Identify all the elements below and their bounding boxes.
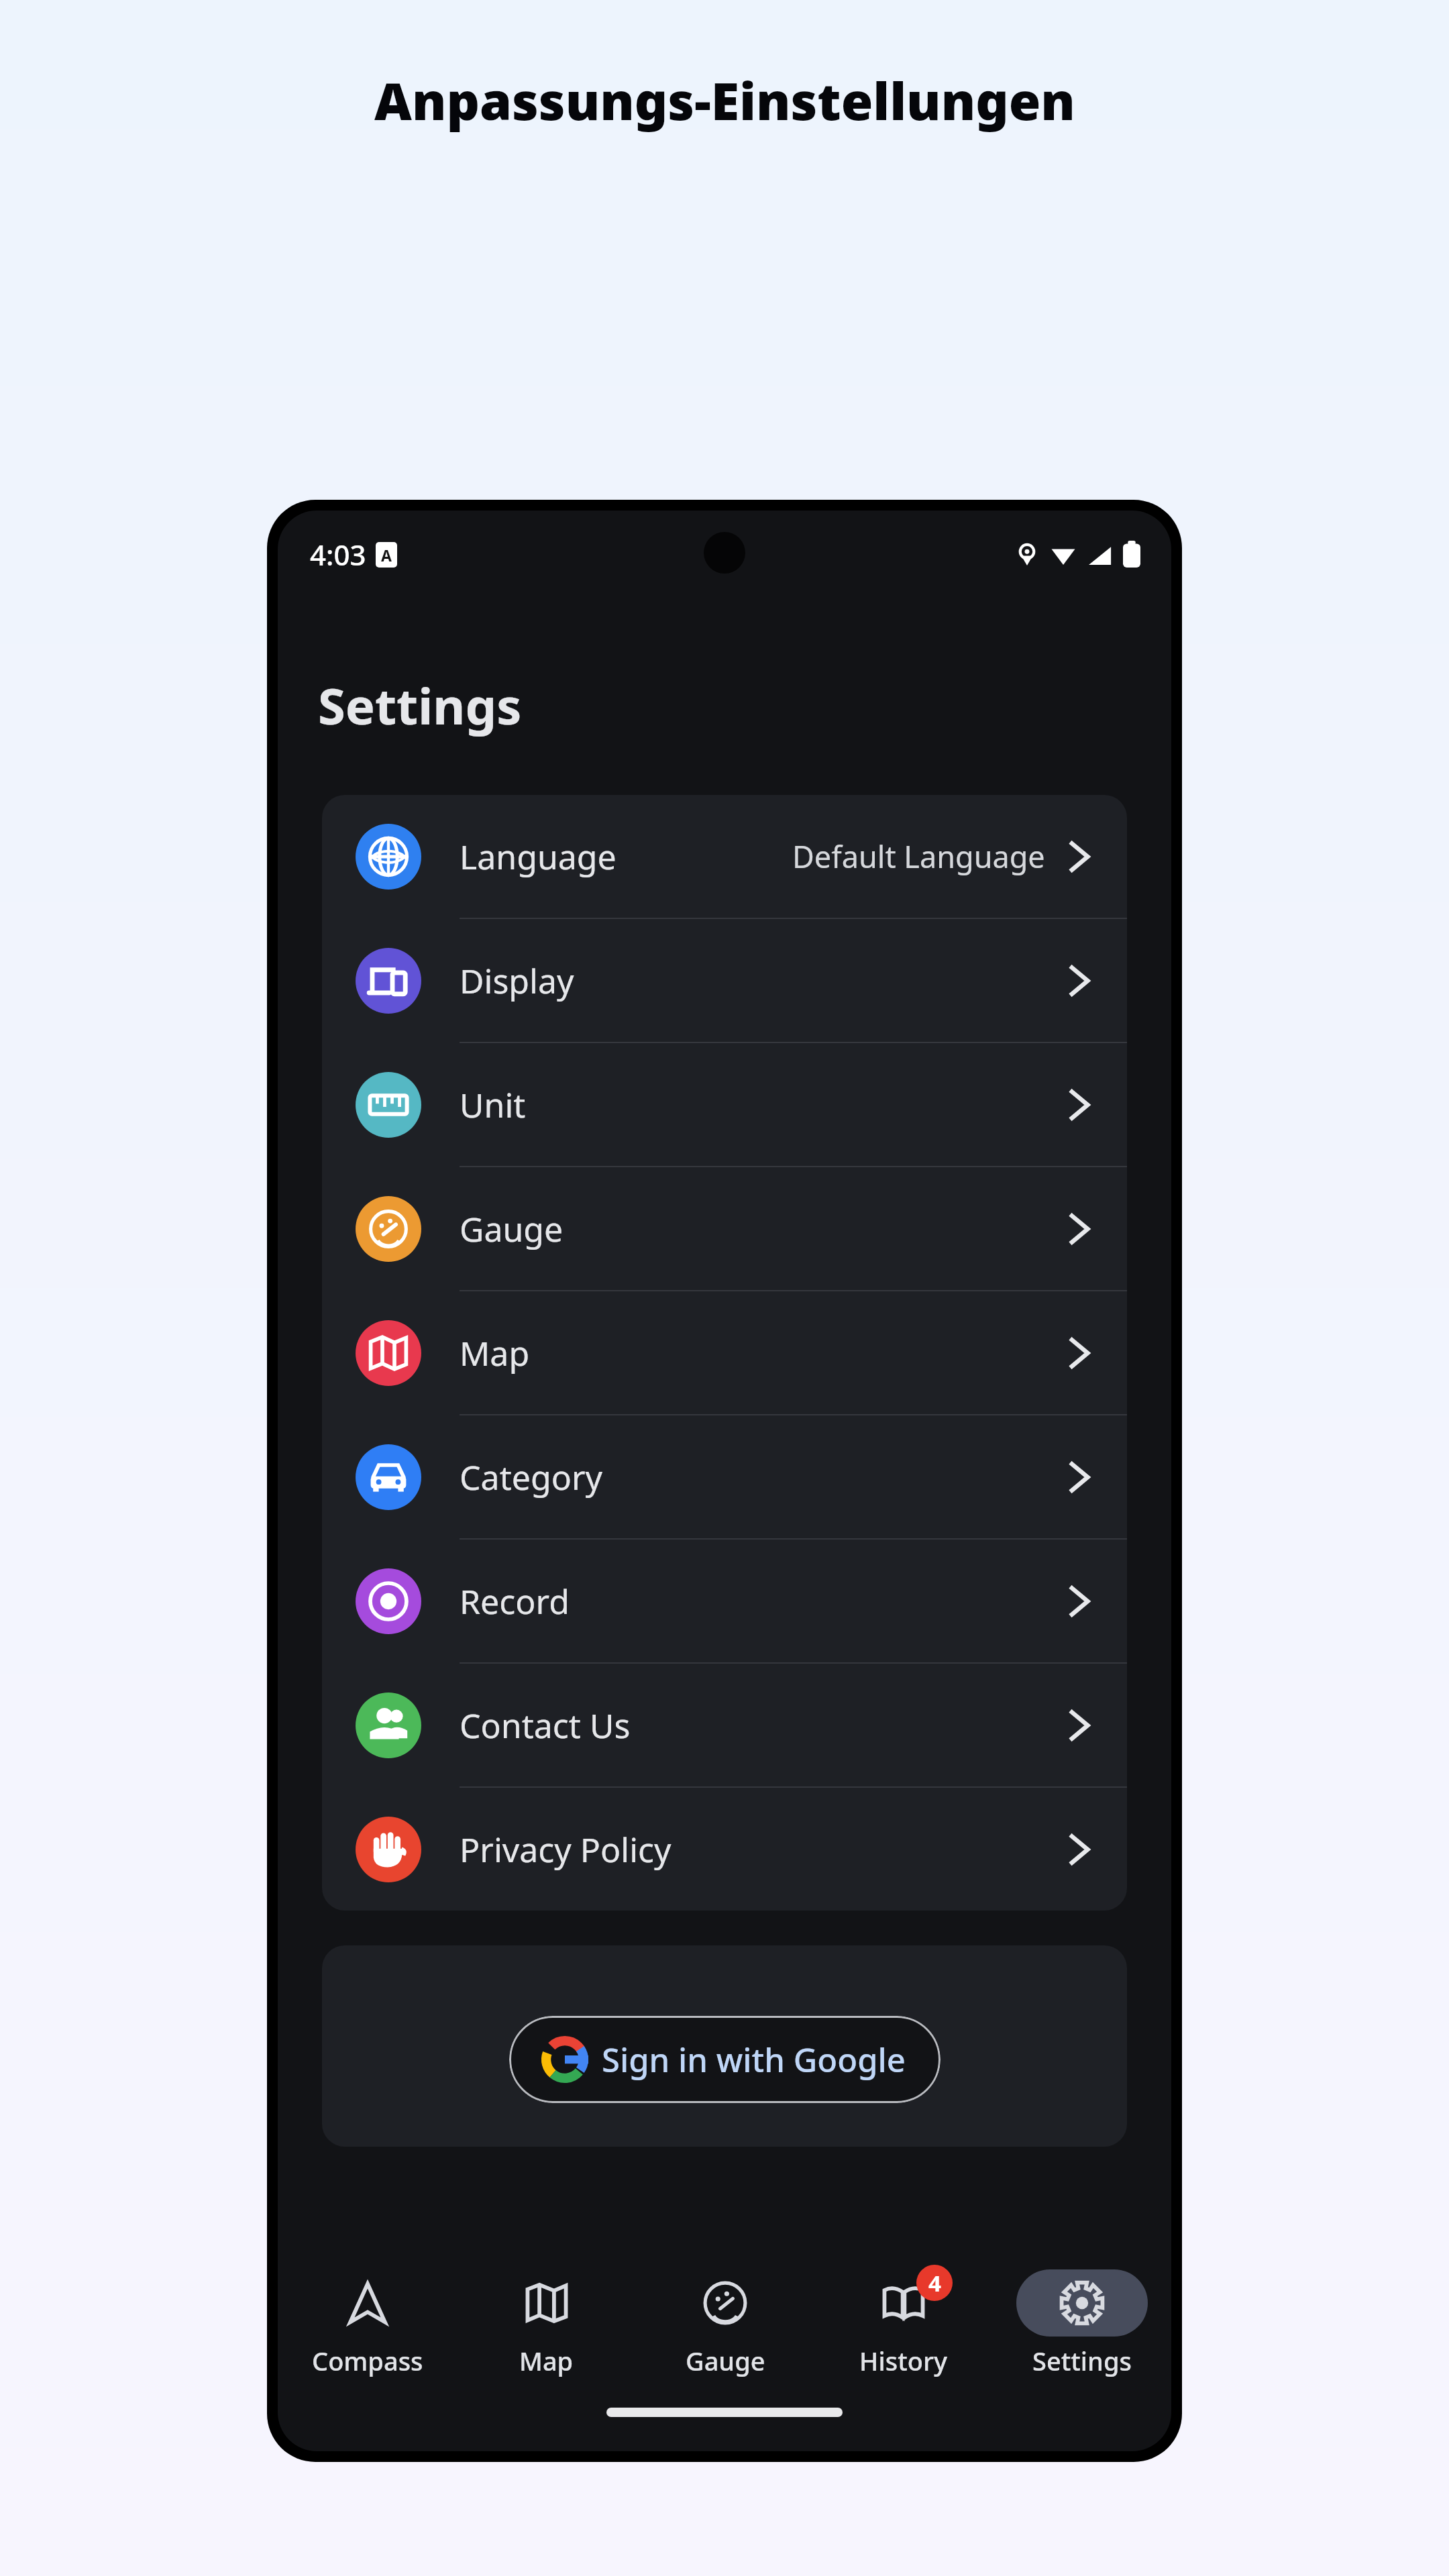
staticText: Map bbox=[460, 1330, 530, 1376]
staticText: Display bbox=[460, 958, 574, 1004]
staticText: Gauge bbox=[460, 1206, 563, 1252]
button[interactable]: Record bbox=[322, 1540, 1127, 1662]
staticText: Settings bbox=[318, 672, 522, 739]
button[interactable]: Sign in with Google bbox=[509, 2016, 941, 2103]
button[interactable]: Gauge bbox=[322, 1167, 1127, 1290]
staticText: Anpassungs-Einstellungen bbox=[374, 65, 1075, 136]
button[interactable]: Contact Us bbox=[322, 1664, 1127, 1786]
staticText: Settings bbox=[1032, 2343, 1132, 2378]
staticText: 4:03 bbox=[310, 535, 366, 574]
staticText: Gauge bbox=[686, 2343, 765, 2378]
button[interactable]: Gauge bbox=[636, 2261, 814, 2387]
staticText: Privacy Policy bbox=[460, 1827, 672, 1872]
button[interactable]: Unit bbox=[322, 1043, 1127, 1166]
button[interactable]: Category bbox=[322, 1415, 1127, 1538]
staticText: Default Language bbox=[792, 836, 1045, 877]
staticText: History bbox=[859, 2343, 948, 2378]
staticText: Unit bbox=[460, 1082, 526, 1128]
button[interactable]: Settings bbox=[993, 2261, 1171, 2387]
button[interactable]: Privacy Policy bbox=[322, 1788, 1127, 1911]
button[interactable]: Compass bbox=[278, 2261, 457, 2387]
button[interactable]: Language bbox=[322, 795, 1127, 918]
staticText: Record bbox=[460, 1578, 570, 1624]
staticText: Category bbox=[460, 1454, 603, 1500]
staticText: Map bbox=[519, 2343, 574, 2378]
staticText: 4 bbox=[928, 2268, 941, 2298]
button[interactable]: Display bbox=[322, 919, 1127, 1042]
staticText: A bbox=[381, 545, 392, 566]
button[interactable]: Map bbox=[457, 2261, 636, 2387]
staticText: Language bbox=[460, 834, 616, 879]
staticText: Contact Us bbox=[460, 1703, 631, 1748]
button[interactable]: 4 bbox=[814, 2261, 993, 2387]
button[interactable]: Map bbox=[322, 1291, 1127, 1414]
staticText: Compass bbox=[312, 2343, 423, 2378]
staticText: Sign in with Google bbox=[602, 2037, 906, 2082]
